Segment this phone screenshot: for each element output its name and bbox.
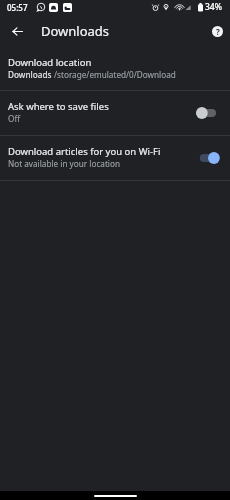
- button[interactable]: Off: [192, 103, 218, 123]
- staticText: Off: [8, 113, 21, 124]
- button[interactable]: Help: [204, 16, 230, 46]
- staticText: Download articles for you on Wi-Fi: [8, 145, 161, 158]
- staticText: 05:57: [7, 2, 28, 13]
- staticText: /storage/emulated/0/Download: [54, 69, 176, 80]
- staticText: Downloads: [41, 22, 110, 40]
- staticText: Downloads: [8, 69, 54, 80]
- staticText: ?: [216, 26, 220, 37]
- button[interactable]: Download articles for you on Wi-Fi: [0, 136, 230, 180]
- staticText: Ask where to save files: [8, 100, 109, 113]
- staticText: 34%: [205, 1, 222, 13]
- button[interactable]: On: [192, 148, 218, 168]
- staticText: Not available in your location: [8, 158, 120, 169]
- staticText: Download location: [8, 56, 92, 69]
- button[interactable]: Download location: [0, 46, 230, 90]
- button[interactable]: Ask where to save files: [0, 91, 230, 135]
- button[interactable]: Back: [0, 16, 34, 46]
